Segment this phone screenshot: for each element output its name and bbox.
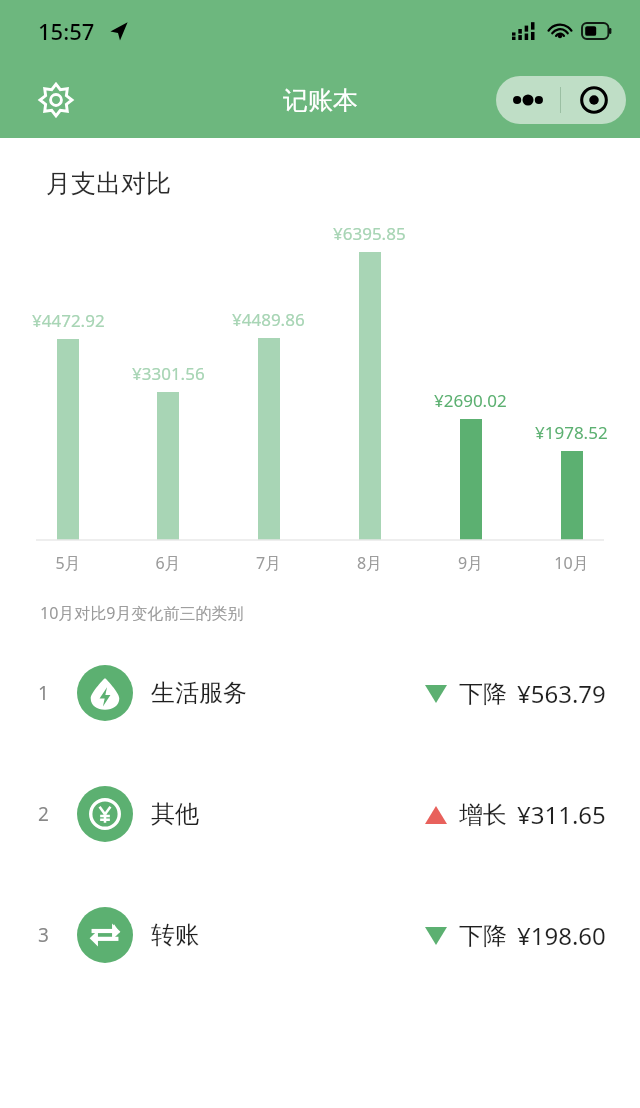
- staticText: ¥4472.92: [32, 309, 105, 332]
- staticText: 10月: [521, 552, 622, 574]
- staticText: ¥6395.85: [333, 222, 406, 245]
- staticText: ¥1978.52: [535, 421, 608, 444]
- button[interactable]: 3: [0, 902, 640, 968]
- staticText: 15:57: [38, 16, 95, 46]
- staticText: 记账本: [283, 85, 358, 116]
- button[interactable]: 1: [0, 660, 640, 726]
- button[interactable]: More: [496, 76, 560, 124]
- staticText: ¥4489.86: [232, 308, 305, 331]
- staticText: 9月: [420, 552, 521, 574]
- staticText: 6月: [118, 552, 218, 574]
- staticText: 8月: [319, 552, 420, 574]
- staticText: 3: [38, 922, 49, 948]
- staticText: ¥311.65: [517, 798, 606, 831]
- staticText: 增长: [459, 800, 507, 830]
- staticText: 月支出对比: [46, 168, 171, 199]
- staticText: ¥2690.02: [434, 389, 507, 412]
- staticText: 下降: [459, 921, 507, 951]
- staticText: ¥3301.56: [132, 362, 205, 385]
- staticText: 7月: [218, 552, 319, 574]
- staticText: 下降: [459, 679, 507, 709]
- staticText: 生活服务: [151, 678, 247, 708]
- button[interactable]: Settings: [34, 78, 78, 122]
- staticText: ¥563.79: [517, 677, 606, 710]
- staticText: 2: [38, 801, 49, 827]
- staticText: 其他: [151, 799, 199, 829]
- staticText: ¥198.60: [517, 919, 606, 952]
- staticText: 转账: [151, 920, 199, 950]
- button[interactable]: Target: [561, 76, 626, 124]
- button[interactable]: 2: [0, 781, 640, 847]
- staticText: 5月: [18, 552, 118, 574]
- staticText: 10月对比9月变化前三的类别: [40, 602, 244, 624]
- staticText: 1: [38, 680, 49, 706]
